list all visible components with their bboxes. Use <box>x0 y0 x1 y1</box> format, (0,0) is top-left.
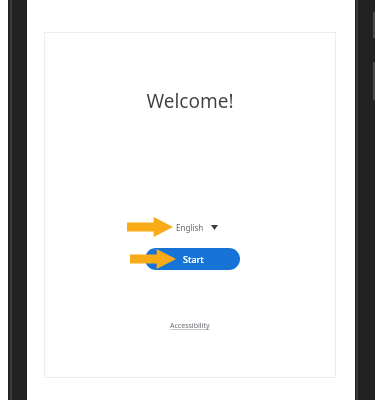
staticText: Start <box>183 253 204 265</box>
other: Pointer to language selector <box>127 217 173 237</box>
other: Pointer to Start button <box>130 249 176 269</box>
button[interactable]: Accessibility <box>166 319 214 333</box>
staticText: Accessibility <box>170 321 210 331</box>
staticText: English <box>176 222 204 233</box>
button[interactable]: English <box>176 222 218 233</box>
staticText: Welcome! <box>146 88 234 114</box>
button[interactable]: Start <box>145 248 240 270</box>
